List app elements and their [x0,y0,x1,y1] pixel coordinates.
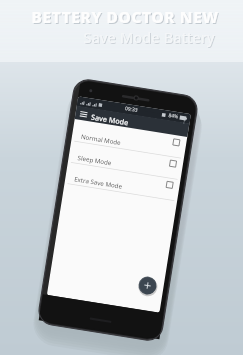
button[interactable]: Battery Doctor New — Save Mode Battery p… [0,0,243,355]
